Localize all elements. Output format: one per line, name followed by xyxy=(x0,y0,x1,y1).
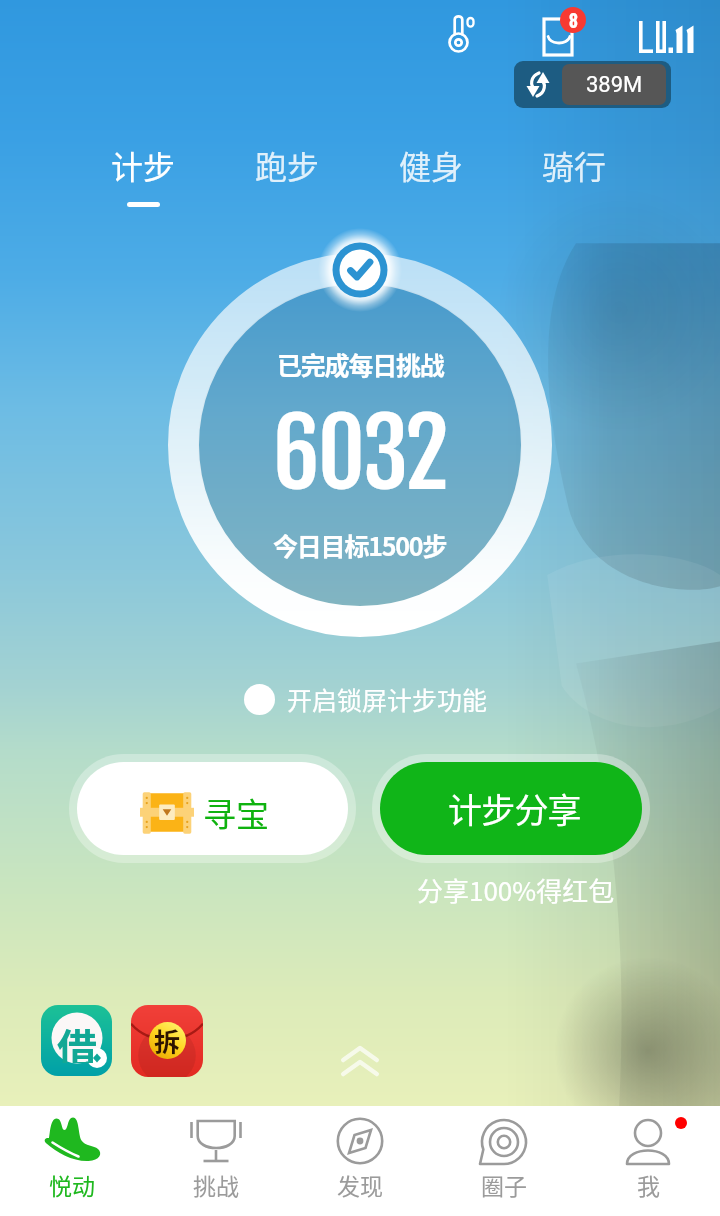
staticText: 跑步 xyxy=(255,142,320,188)
staticText: 8 xyxy=(569,8,578,32)
button[interactable]: 寻宝 xyxy=(77,762,348,855)
button[interactable]: 借钱 xyxy=(41,1005,112,1076)
staticText: 寻宝 xyxy=(203,789,269,837)
button[interactable]: 网速 389M xyxy=(514,61,671,108)
button[interactable]: 骑行 xyxy=(522,138,626,214)
button[interactable]: 开启锁屏计步功能 xyxy=(244,680,488,718)
staticText: 健身 xyxy=(399,142,464,188)
button[interactable]: 展开 xyxy=(330,1040,390,1080)
button[interactable]: 挑战 xyxy=(144,1106,288,1216)
button[interactable]: 计步 xyxy=(91,138,195,214)
button[interactable]: 计步分享 xyxy=(380,762,642,855)
staticText: 分享100%得红包 xyxy=(417,871,615,909)
staticText: 389M xyxy=(586,72,643,98)
button[interactable]: 圈子 xyxy=(432,1106,576,1216)
staticText: 我 xyxy=(637,1168,660,1201)
staticText: 今日目标1500步 xyxy=(273,527,447,563)
staticText: 圈子 xyxy=(481,1168,527,1201)
staticText: 发现 xyxy=(337,1168,383,1201)
button[interactable]: 跑步 xyxy=(235,138,339,214)
staticText: 骑行 xyxy=(542,142,607,188)
button[interactable]: 拆红包 xyxy=(131,1005,203,1077)
button[interactable]: 健身 xyxy=(379,138,483,214)
button[interactable]: 我 xyxy=(576,1106,720,1216)
staticText: 6032 xyxy=(273,396,447,512)
button[interactable]: 发现 xyxy=(288,1106,432,1216)
staticText: 已完成每日挑战 xyxy=(277,346,444,382)
staticText: 悦动 xyxy=(49,1168,95,1201)
staticText: 拆 xyxy=(154,1022,181,1059)
staticText: 计步分享 xyxy=(448,784,581,833)
button[interactable]: 悦动 xyxy=(0,1106,144,1216)
staticText: 计步 xyxy=(111,142,176,188)
staticText: 开启锁屏计步功能 xyxy=(287,681,488,717)
staticText: 借 xyxy=(57,1017,97,1063)
staticText: 挑战 xyxy=(193,1168,239,1201)
